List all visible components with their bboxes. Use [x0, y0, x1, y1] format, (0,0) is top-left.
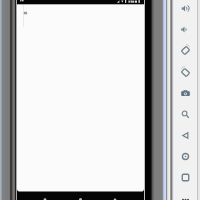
button[interactable]: Rotate right	[176, 63, 194, 81]
button[interactable]: Rotate left	[176, 41, 194, 59]
button[interactable]: More	[176, 189, 194, 200]
button[interactable]: Take screenshot	[176, 84, 194, 102]
button[interactable]: Volume down	[176, 20, 194, 38]
button[interactable]: Overview	[176, 168, 194, 186]
button[interactable]: Volume up	[176, 0, 194, 17]
button[interactable]: Zoom	[176, 105, 194, 123]
button[interactable]: Back	[176, 126, 194, 144]
button[interactable]: Home	[176, 147, 194, 165]
